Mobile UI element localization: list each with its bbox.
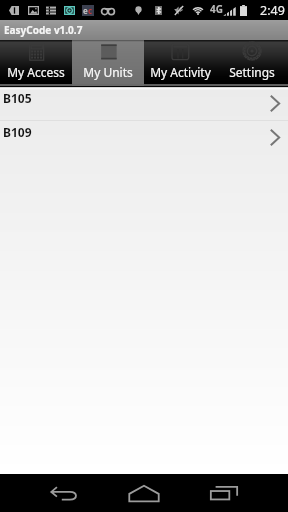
staticText: e xyxy=(83,5,88,16)
button[interactable]: Recent apps xyxy=(184,474,264,512)
button[interactable]: My Units xyxy=(72,40,144,86)
staticText: B105 xyxy=(3,90,32,106)
staticText: My Units xyxy=(83,64,133,80)
staticText: My Activity xyxy=(150,64,211,80)
button[interactable]: Settings xyxy=(216,40,288,86)
staticText: c xyxy=(88,5,93,16)
staticText: 2:49 xyxy=(260,2,285,19)
staticText: B109 xyxy=(3,124,32,140)
button[interactable]: My Activity xyxy=(144,40,216,86)
button[interactable]: B109 xyxy=(0,121,288,154)
button[interactable]: Home xyxy=(104,474,184,512)
staticText: Settings xyxy=(229,64,275,80)
staticText: 4G xyxy=(210,2,223,16)
button[interactable]: B105 xyxy=(0,87,288,120)
button[interactable]: Back xyxy=(24,474,104,512)
staticText: EasyCode v1.0.7 xyxy=(4,23,83,37)
staticText: My Access xyxy=(7,64,65,80)
button[interactable]: My Access xyxy=(0,40,72,86)
